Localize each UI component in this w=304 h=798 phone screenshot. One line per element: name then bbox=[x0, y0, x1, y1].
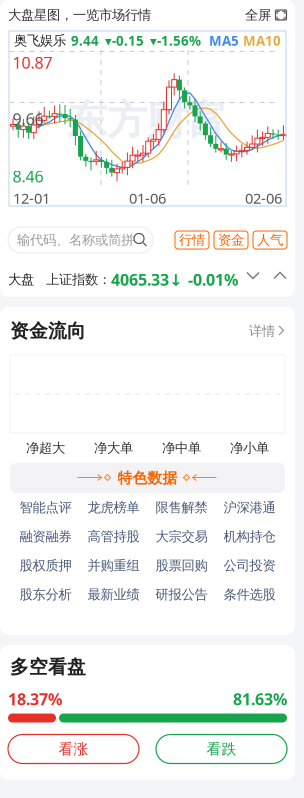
staticText: 多空看盘 bbox=[10, 655, 86, 678]
button[interactable]: 股权质押 bbox=[11, 551, 79, 580]
staticText: 高管持股 bbox=[87, 528, 139, 545]
staticText: 资金 bbox=[218, 232, 244, 248]
button[interactable]: 人气 bbox=[253, 231, 287, 249]
button[interactable]: 融资融券 bbox=[11, 522, 79, 551]
staticText: 龙虎榜单 bbox=[87, 499, 139, 516]
staticText: 9.66 bbox=[12, 108, 43, 130]
staticText: 资金流向 bbox=[10, 319, 86, 342]
button[interactable]: 限售解禁 bbox=[147, 493, 215, 522]
staticText: 输代码、名称或简拼 bbox=[17, 232, 134, 248]
staticText: 股票回购 bbox=[155, 557, 207, 574]
button[interactable]: 大宗交易 bbox=[147, 522, 215, 551]
button[interactable]: 上一个 bbox=[274, 272, 287, 286]
staticText: 并购重组 bbox=[87, 557, 139, 574]
staticText: MA10 bbox=[243, 32, 281, 49]
button[interactable]: 条件选股 bbox=[215, 580, 283, 609]
button[interactable]: 股东分析 bbox=[11, 580, 79, 609]
staticText: 看跌 bbox=[206, 740, 236, 758]
staticText: 净大单 bbox=[94, 440, 133, 456]
button[interactable]: 沪深港通 bbox=[215, 493, 283, 522]
staticText: ▾-0.15 bbox=[105, 32, 144, 49]
staticText: 详情 bbox=[249, 323, 275, 339]
button[interactable]: 最新业绩 bbox=[79, 580, 147, 609]
staticText: 机构持仓 bbox=[223, 528, 275, 545]
button[interactable]: 股票回购 bbox=[147, 551, 215, 580]
staticText: 12-01 bbox=[13, 188, 50, 208]
staticText: 02-06 bbox=[245, 188, 282, 208]
staticText: 研报公告 bbox=[155, 586, 207, 603]
staticText: 81.63% bbox=[233, 688, 287, 710]
button[interactable]: 看跌 bbox=[156, 734, 287, 763]
staticText: 01-06 bbox=[129, 188, 166, 208]
staticText: 东方财富 bbox=[67, 96, 227, 145]
staticText: 净中单 bbox=[162, 440, 201, 456]
staticText: 沪深港通 bbox=[223, 499, 275, 516]
button[interactable]: 研报公告 bbox=[147, 580, 215, 609]
staticText: 行情 bbox=[179, 232, 205, 248]
staticText: 股权质押 bbox=[19, 557, 71, 574]
button[interactable]: 龙虎榜单 bbox=[79, 493, 147, 522]
staticText: 特色数据 bbox=[117, 469, 177, 487]
button[interactable]: 看涨 bbox=[8, 734, 139, 763]
staticText: 奥飞娱乐 bbox=[14, 32, 66, 49]
button[interactable]: 输代码、名称或简拼 bbox=[8, 227, 153, 253]
staticText: 4065.33↓ bbox=[111, 269, 182, 290]
button[interactable]: 并购重组 bbox=[79, 551, 147, 580]
staticText: 限售解禁 bbox=[155, 499, 207, 516]
staticText: -0.01% bbox=[188, 269, 238, 290]
staticText: 条件选股 bbox=[223, 586, 275, 603]
staticText: MA5 bbox=[209, 32, 239, 49]
button[interactable]: 全屏 bbox=[245, 1, 287, 29]
staticText: 大盘星图，一览市场行情 bbox=[8, 7, 151, 23]
staticText: 上证指数： bbox=[46, 271, 111, 288]
button[interactable]: 资金 bbox=[214, 231, 248, 249]
staticText: 看涨 bbox=[58, 740, 88, 758]
staticText: 全屏 bbox=[245, 7, 271, 23]
staticText: 最新业绩 bbox=[87, 586, 139, 603]
staticText: 大盘 bbox=[8, 271, 34, 288]
staticText: 股东分析 bbox=[19, 586, 71, 603]
staticText: 人气 bbox=[257, 232, 283, 248]
staticText: 9.44 bbox=[71, 32, 99, 49]
button[interactable]: 公司投资 bbox=[215, 551, 283, 580]
button[interactable]: 智能点评 bbox=[11, 493, 79, 522]
button[interactable]: 机构持仓 bbox=[215, 522, 283, 551]
staticText: 18.37% bbox=[8, 688, 62, 710]
button[interactable]: 下一个 bbox=[247, 272, 260, 286]
staticText: 融资融券 bbox=[19, 528, 71, 545]
staticText: 8.46 bbox=[12, 166, 43, 187]
staticText: 净小单 bbox=[230, 440, 269, 456]
staticText: 智能点评 bbox=[19, 499, 71, 516]
staticText: 大宗交易 bbox=[155, 528, 207, 545]
staticText: 公司投资 bbox=[223, 557, 275, 574]
staticText: ▾-1.56% bbox=[150, 32, 201, 49]
staticText: 净超大 bbox=[26, 440, 65, 456]
button[interactable]: 详情 bbox=[249, 315, 285, 347]
button[interactable]: 高管持股 bbox=[79, 522, 147, 551]
staticText: 10.87 bbox=[12, 52, 52, 73]
button[interactable]: 行情 bbox=[175, 231, 209, 249]
